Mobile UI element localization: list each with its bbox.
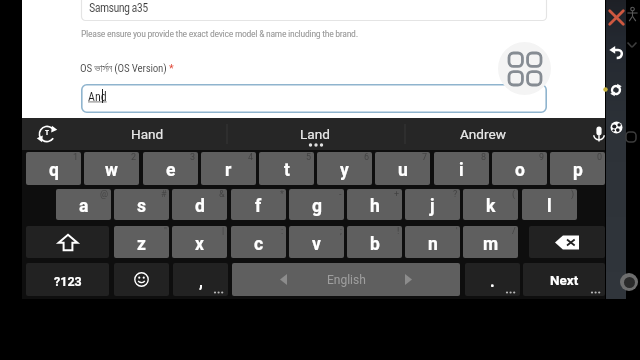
button[interactable]: l [522, 189, 577, 220]
button[interactable]: o [492, 152, 547, 185]
button[interactable]: z [114, 226, 169, 258]
staticText: h [370, 196, 380, 217]
button[interactable]: Screen recorder [620, 273, 638, 291]
staticText: z [137, 234, 146, 255]
staticText: 3 [190, 152, 196, 163]
button[interactable]: f [231, 189, 286, 220]
button[interactable]: Voice input [589, 124, 609, 144]
staticText: And [88, 90, 107, 104]
button[interactable]: Hand [92, 118, 202, 150]
staticText: * [169, 62, 174, 75]
staticText: m [483, 234, 499, 255]
button[interactable]: a [56, 189, 111, 220]
button[interactable]: English [232, 263, 460, 296]
button[interactable]: Shift [26, 226, 109, 258]
staticText: " [164, 226, 167, 237]
staticText: Samsung a35 [89, 1, 148, 15]
staticText: @ [100, 189, 109, 200]
staticText: s [137, 196, 147, 217]
button[interactable]: Refresh [610, 84, 622, 96]
button[interactable]: v [289, 226, 344, 258]
staticText: : [281, 226, 284, 237]
staticText: * [280, 189, 284, 200]
button[interactable]: , [173, 263, 228, 296]
staticText: OS ভার্সন (OS Version) [80, 62, 169, 75]
staticText: 9 [539, 152, 545, 163]
staticText: ! [397, 226, 400, 237]
staticText: . [490, 272, 495, 291]
staticText: e [166, 160, 176, 181]
staticText: a [79, 196, 89, 217]
staticText: b [370, 234, 380, 255]
staticText: ?123 [54, 274, 82, 289]
staticText: Andrew [460, 126, 506, 142]
button[interactable]: Next [523, 263, 605, 296]
staticText: w [105, 160, 118, 181]
button[interactable]: Language [610, 121, 623, 134]
button[interactable]: c [231, 226, 286, 258]
staticText: ' [456, 226, 458, 237]
staticText: - [339, 189, 342, 200]
button[interactable]: e [143, 152, 198, 185]
staticText: d [195, 196, 205, 217]
staticText: & [219, 189, 225, 200]
staticText: 5 [306, 152, 312, 163]
button[interactable]: Emoji [114, 263, 169, 296]
button[interactable]: p [550, 152, 605, 185]
staticText: t [284, 160, 290, 181]
button[interactable]: s [114, 189, 169, 220]
button[interactable]: Close [608, 9, 625, 26]
button[interactable]: q [26, 152, 81, 185]
staticText: ) [571, 189, 575, 200]
staticText: j [430, 196, 435, 217]
staticText: u [398, 160, 408, 181]
button[interactable]: j [405, 189, 460, 220]
button[interactable]: Switch language [37, 124, 57, 144]
button[interactable]: n [405, 226, 460, 258]
button[interactable]: x [172, 226, 227, 258]
staticText: p [573, 160, 583, 181]
button[interactable]: u [375, 152, 430, 185]
button[interactable]: k [463, 189, 518, 220]
button[interactable]: r [201, 152, 256, 185]
staticText: y [340, 160, 349, 181]
staticText: , [199, 272, 203, 291]
button[interactable]: Back [609, 46, 623, 60]
button[interactable]: Backspace [529, 226, 605, 258]
button[interactable]: w [84, 152, 139, 185]
button[interactable]: m [463, 226, 518, 258]
staticText: / [512, 226, 516, 237]
button[interactable]: i [434, 152, 489, 185]
staticText: Hand [131, 126, 164, 142]
staticText: # [161, 189, 167, 200]
button[interactable]: y [317, 152, 372, 185]
staticText: f [255, 196, 262, 217]
staticText: | [222, 226, 225, 237]
button[interactable]: . [465, 263, 520, 296]
staticText: ( [512, 189, 516, 200]
staticText: g [312, 196, 322, 217]
button[interactable]: g [289, 189, 344, 220]
button[interactable]: d [172, 189, 227, 220]
button[interactable]: Andrew [428, 118, 538, 150]
button[interactable]: Apps [498, 42, 551, 95]
staticText: i [459, 160, 464, 181]
staticText: + [394, 189, 400, 200]
staticText: ; [340, 226, 342, 237]
staticText: v [312, 234, 321, 255]
staticText: c [254, 234, 264, 255]
staticText: 4 [248, 152, 254, 163]
staticText: 0 [597, 152, 603, 163]
button[interactable] [81, 84, 547, 113]
staticText: k [486, 196, 496, 217]
button[interactable]: ?123 [26, 263, 109, 296]
button[interactable]: b [347, 226, 402, 258]
staticText: Land [300, 126, 330, 142]
button[interactable]: t [259, 152, 314, 185]
button[interactable] [81, 0, 547, 21]
staticText: T [45, 129, 50, 137]
button[interactable]: Land [260, 118, 370, 150]
button[interactable]: h [347, 189, 402, 220]
staticText: l [547, 196, 552, 217]
staticText: 1 [73, 152, 79, 163]
